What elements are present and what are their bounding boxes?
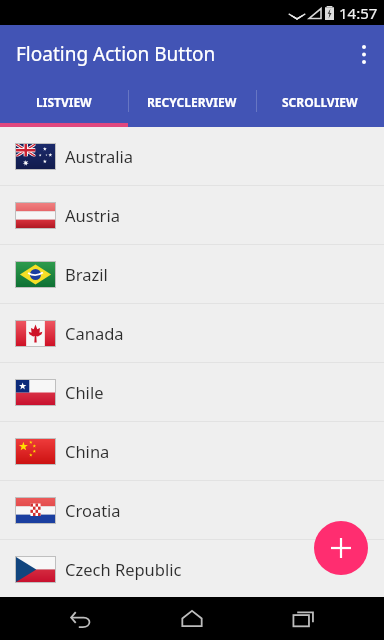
- button[interactable]: LISTVIEW: [0, 83, 128, 127]
- button[interactable]: Back: [51, 597, 111, 640]
- staticText: SCROLLVIEW: [282, 94, 358, 110]
- button[interactable]: Recent apps: [273, 597, 333, 640]
- button[interactable]: More options: [344, 25, 384, 83]
- staticText: Canada: [65, 322, 124, 344]
- button[interactable]: Australia: [0, 127, 384, 185]
- staticText: Australia: [65, 145, 134, 167]
- button[interactable]: SCROLLVIEW: [256, 83, 384, 127]
- button[interactable]: Austria: [0, 186, 384, 244]
- staticText: Brazil: [65, 263, 108, 285]
- staticText: LISTVIEW: [36, 94, 92, 110]
- staticText: RECYCLERVIEW: [147, 94, 237, 110]
- button[interactable]: Canada: [0, 304, 384, 362]
- button[interactable]: RECYCLERVIEW: [128, 83, 256, 127]
- staticText: China: [65, 440, 110, 462]
- staticText: Floating Action Button: [16, 41, 216, 67]
- staticText: 14:57: [339, 3, 378, 23]
- staticText: Croatia: [65, 499, 121, 521]
- button[interactable]: Brazil: [0, 245, 384, 303]
- button[interactable]: Home: [162, 597, 222, 640]
- button[interactable]: Add: [314, 521, 368, 575]
- button[interactable]: Croatia: [0, 481, 384, 539]
- staticText: Czech Republic: [65, 558, 182, 580]
- staticText: Chile: [65, 381, 104, 403]
- button[interactable]: Chile: [0, 363, 384, 421]
- staticText: Austria: [65, 204, 120, 226]
- button[interactable]: Czech Republic: [0, 540, 384, 598]
- button[interactable]: China: [0, 422, 384, 480]
